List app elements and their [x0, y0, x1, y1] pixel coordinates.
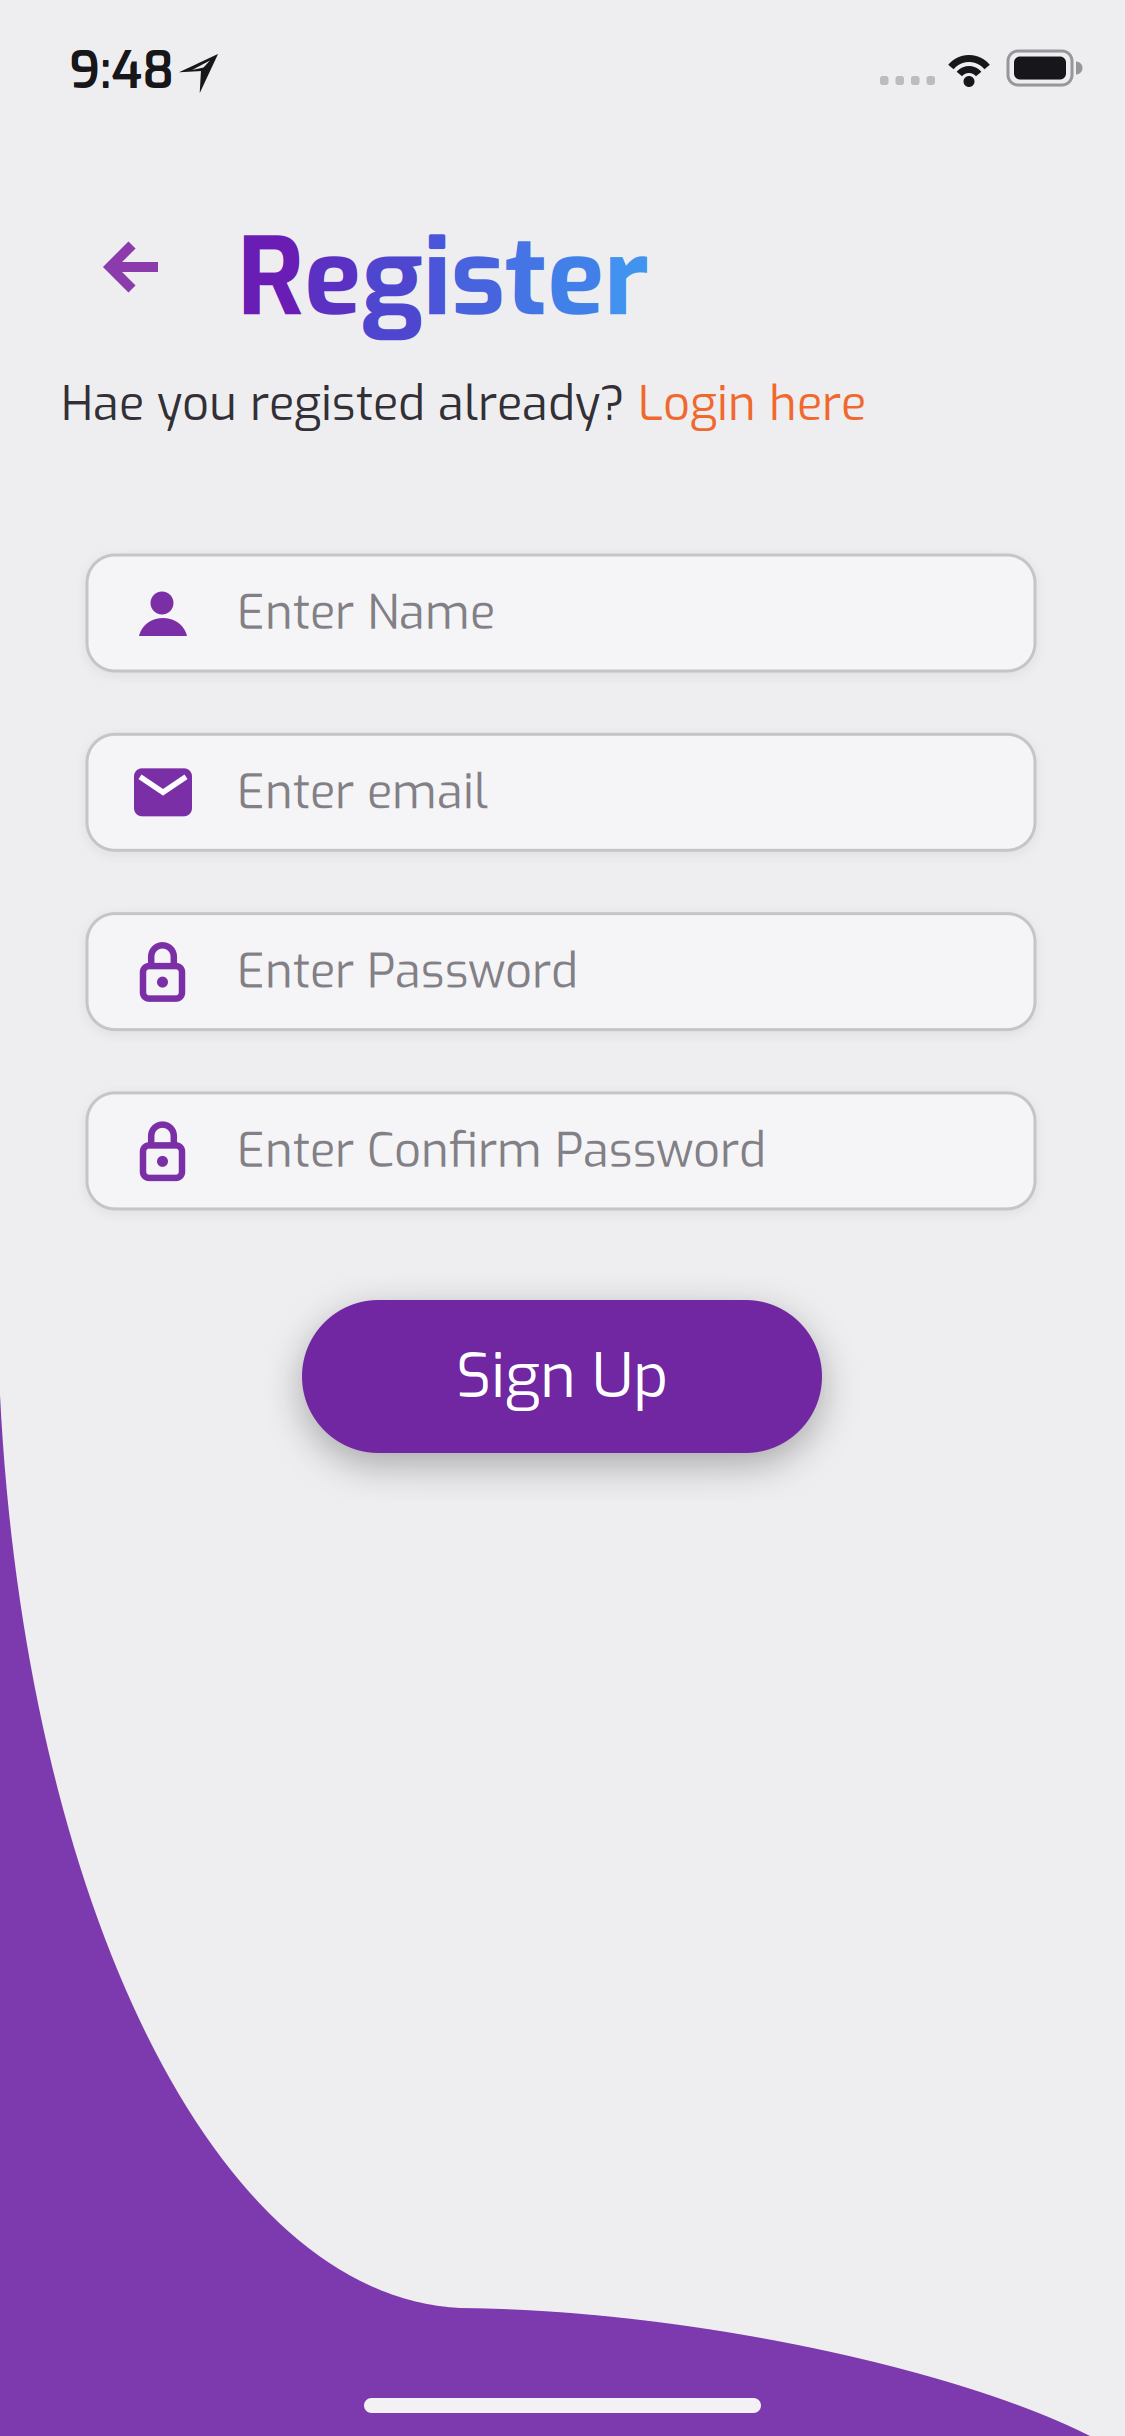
button[interactable]: Enter Name	[87, 555, 1035, 671]
staticText: s	[451, 207, 505, 349]
staticText: t	[505, 207, 547, 349]
button[interactable]: Enter email	[87, 734, 1035, 850]
button[interactable]: Login here	[638, 373, 866, 435]
button[interactable]: Enter Confirm Password	[87, 1093, 1035, 1209]
staticText: Hae you registed already?	[61, 373, 638, 435]
staticText: Enter Password	[237, 940, 578, 1003]
staticText: 9:48	[69, 37, 174, 105]
staticText: e	[547, 207, 604, 349]
staticText: r	[604, 207, 649, 349]
button[interactable]: Sign Up	[302, 1300, 822, 1453]
staticText: e	[304, 207, 361, 349]
staticText: Sign Up	[456, 1336, 668, 1417]
button[interactable]: Back	[105, 239, 163, 295]
staticText: Enter email	[237, 761, 488, 824]
staticText: Login here	[638, 373, 866, 435]
staticText: i	[423, 207, 451, 349]
staticText: g	[361, 207, 423, 349]
staticText: Enter Name	[237, 582, 495, 644]
staticText: R	[237, 207, 304, 349]
staticText: Enter Confirm Password	[237, 1120, 766, 1182]
button[interactable]: Enter Password	[87, 914, 1035, 1030]
